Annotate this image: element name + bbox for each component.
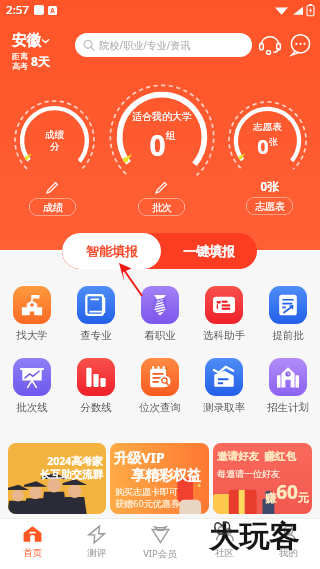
staticText: 安徽: [12, 31, 41, 49]
button[interactable]: 测录取率: [192, 358, 256, 414]
staticText: 志愿表: [255, 200, 285, 213]
staticText: 智能填报: [86, 243, 138, 259]
staticText: 志愿表: [253, 121, 282, 133]
button[interactable]: 一键填报: [161, 233, 257, 269]
staticText: 购买志愿卡即可: [115, 486, 178, 497]
staticText: 分: [50, 141, 60, 153]
staticText: 0: [149, 126, 166, 164]
staticText: VIP会员: [143, 547, 177, 560]
staticText: 升级VIP: [113, 448, 165, 467]
staticText: 找大学: [16, 329, 48, 342]
staticText: 测录取率: [203, 401, 245, 414]
staticText: 社区: [215, 547, 234, 559]
button[interactable]: 提前批: [256, 286, 320, 342]
staticText: 邀请好友 赚红包: [217, 449, 296, 463]
staticText: 查专业: [80, 329, 112, 342]
button[interactable]: 2024高考家: [8, 443, 106, 514]
staticText: 提前批: [272, 329, 304, 342]
button[interactable]: 分数线: [64, 358, 128, 414]
staticText: 成绩: [43, 201, 63, 214]
staticText: 张: [269, 136, 278, 147]
staticText: 赚: [265, 491, 276, 505]
staticText: 8天: [31, 53, 50, 69]
button[interactable]: 批次线: [0, 358, 64, 414]
staticText: 招生计划: [267, 401, 309, 414]
staticText: 2:57: [6, 2, 29, 18]
button[interactable]: Messages: [288, 33, 312, 57]
staticText: 成绩: [45, 129, 64, 141]
staticText: 0张: [260, 179, 279, 195]
button[interactable]: 位次查询: [128, 358, 192, 414]
staticText: 我的: [279, 547, 298, 559]
button[interactable]: 社区: [192, 525, 256, 559]
staticText: 一键填报: [183, 243, 235, 259]
staticText: 享精彩权益: [131, 467, 201, 485]
button[interactable]: 邀请好友 赚红包: [213, 443, 312, 514]
button[interactable]: 首页: [0, 525, 64, 559]
button[interactable]: 升级VIP: [110, 443, 209, 514]
staticText: A: [50, 6, 55, 15]
button[interactable]: 批次: [138, 198, 185, 216]
staticText: 分数线: [80, 401, 112, 414]
staticText: 距离: [12, 51, 28, 61]
button[interactable]: 招生计划: [256, 358, 320, 414]
staticText: 0: [257, 133, 269, 160]
button[interactable]: 找大学: [0, 286, 64, 342]
staticText: 大玩客: [209, 518, 299, 556]
button[interactable]: 志愿表: [246, 197, 293, 215]
button[interactable]: 查专业: [64, 286, 128, 342]
staticText: 元: [298, 491, 309, 505]
button[interactable]: 选科助手: [192, 286, 256, 342]
staticText: 60: [276, 479, 298, 505]
staticText: 每邀请一位好友: [217, 468, 280, 479]
staticText: 2024高考家: [47, 454, 103, 468]
staticText: 组: [166, 129, 176, 142]
button[interactable]: 看职业: [128, 286, 192, 342]
staticText: 测评: [87, 547, 106, 559]
button[interactable]: 成绩: [29, 198, 76, 216]
button[interactable]: 智能填报: [62, 233, 161, 269]
staticText: 适合我的大学: [132, 110, 192, 123]
staticText: 位次查询: [139, 401, 181, 414]
staticText: 批次线: [16, 401, 48, 414]
button[interactable]: 测评: [64, 525, 128, 559]
staticText: 选科助手: [203, 329, 245, 342]
staticText: 高考: [12, 61, 28, 71]
button[interactable]: VIP会员: [128, 525, 192, 560]
staticText: 首页: [23, 547, 42, 559]
staticText: 院校/职业/专业/资讯: [99, 38, 191, 52]
staticText: 批次: [152, 201, 172, 214]
button[interactable]: 院校/职业/专业/资讯: [75, 33, 252, 57]
button[interactable]: Customer service: [258, 33, 282, 57]
button[interactable]: 我的: [256, 525, 320, 559]
staticText: 长互助交流群: [40, 468, 103, 481]
staticText: 看职业: [144, 329, 176, 342]
staticText: 获赠60元优惠券: [115, 497, 180, 509]
